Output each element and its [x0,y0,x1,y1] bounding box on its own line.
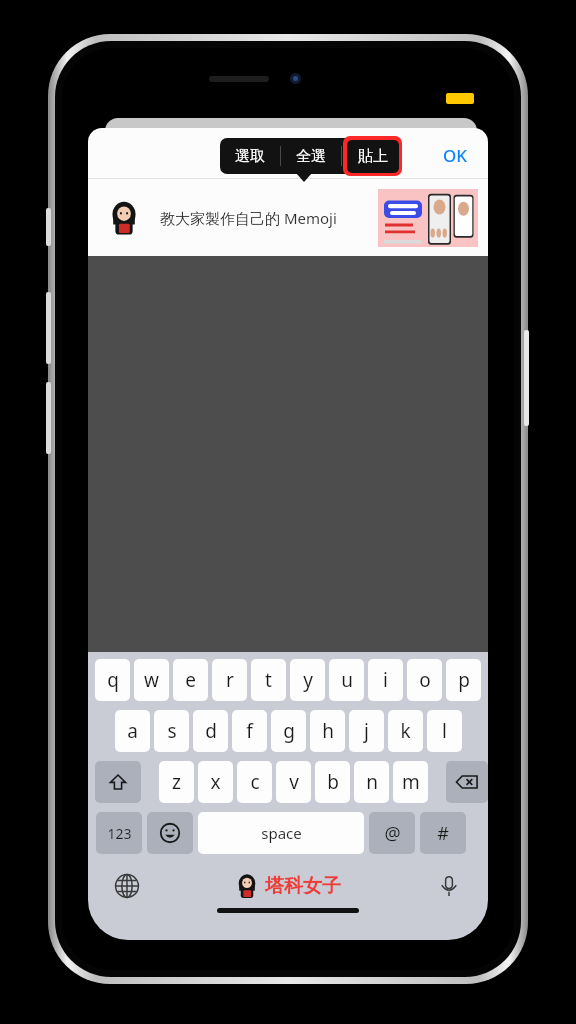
staticText: c [250,769,260,795]
staticText: u [341,667,353,693]
staticText: # [437,821,449,846]
staticText: g [283,718,295,744]
button[interactable]: space [198,812,364,854]
button[interactable]: l [427,710,462,752]
staticText: 選取 [235,147,265,166]
staticText: x [210,769,221,795]
button[interactable]: h [310,710,345,752]
button[interactable]: r [212,659,247,701]
staticText: 塔科女子 [265,874,341,898]
staticText: d [205,718,217,744]
staticText: r [226,667,234,693]
staticText: a [127,718,138,744]
button[interactable]: Emoji [147,812,193,854]
button[interactable]: Backspace [446,761,488,803]
staticText: v [289,769,299,795]
button[interactable]: # [420,812,466,854]
button[interactable]: v [276,761,311,803]
button[interactable]: 選取 [220,138,280,174]
button[interactable]: f [232,710,267,752]
button[interactable]: x [198,761,233,803]
staticText: y [303,667,313,693]
button[interactable]: 教大家製作自己的 Memoji [88,179,488,256]
button[interactable]: t [251,659,286,701]
button[interactable]: @ [369,812,415,854]
button[interactable]: m [393,761,428,803]
staticText: space [261,823,302,843]
staticText: OK [443,144,468,167]
staticText: 123 [107,824,132,843]
button[interactable]: Dictation [432,869,466,903]
button[interactable]: 123 [96,812,142,854]
button[interactable]: d [193,710,228,752]
button[interactable]: p [446,659,481,701]
button[interactable]: u [329,659,364,701]
button[interactable]: s [154,710,189,752]
staticText: w [144,667,159,693]
button[interactable]: e [173,659,208,701]
staticText: @ [384,821,401,846]
staticText: b [327,769,339,795]
button[interactable]: o [407,659,442,701]
button[interactable]: a [115,710,150,752]
button[interactable]: w [134,659,169,701]
button[interactable]: OK [432,140,478,170]
button[interactable]: j [349,710,384,752]
staticText: n [366,769,378,795]
button[interactable]: Change keyboard language [110,869,144,903]
staticText: e [185,667,196,693]
staticText: l [442,718,447,744]
staticText: i [383,667,388,693]
button[interactable]: i [368,659,403,701]
staticText: f [246,718,253,744]
button[interactable]: q [95,659,130,701]
button[interactable]: b [315,761,350,803]
staticText: 全選 [296,147,326,166]
button[interactable]: z [159,761,194,803]
staticText: o [419,667,431,693]
button[interactable]: 貼上 [342,138,402,174]
staticText: j [364,718,369,744]
staticText: s [167,718,177,744]
button[interactable]: Shift [95,761,141,803]
staticText: 貼上 [357,147,387,166]
staticText: p [458,667,470,693]
button[interactable]: 全選 [281,138,341,174]
staticText: t [265,667,272,693]
staticText: k [400,718,411,744]
button[interactable]: n [354,761,389,803]
staticText: 教大家製作自己的 Memoji [160,208,337,228]
staticText: 貼上 [358,147,388,166]
staticText: h [322,718,334,744]
button[interactable]: g [271,710,306,752]
button[interactable]: c [237,761,272,803]
staticText: m [402,769,420,795]
button[interactable]: k [388,710,423,752]
button[interactable]: y [290,659,325,701]
staticText: q [107,667,119,693]
staticText: z [172,769,181,795]
